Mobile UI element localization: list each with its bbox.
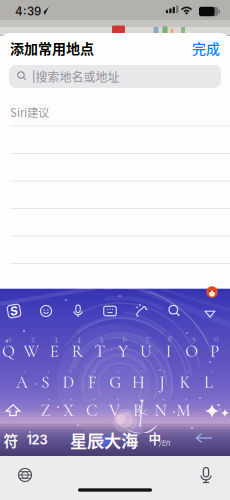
button[interactable]: Y: [112, 337, 134, 365]
button[interactable]: G: [104, 368, 126, 396]
staticText: Z: [40, 400, 50, 421]
button[interactable]: Search: [164, 301, 184, 321]
staticText: A: [16, 372, 28, 393]
button[interactable]: Voice input: [68, 301, 88, 321]
staticText: X: [63, 400, 74, 421]
staticText: F: [88, 372, 96, 393]
staticText: 123: [26, 432, 47, 448]
staticText: N: [154, 400, 166, 421]
button[interactable]: D: [58, 368, 80, 396]
staticText: D: [63, 372, 75, 393]
staticText: 7: [145, 333, 149, 344]
button[interactable]: I: [158, 337, 180, 365]
staticText: 中: [148, 429, 161, 447]
staticText: 完成: [192, 38, 220, 58]
button[interactable]: S: [34, 368, 56, 396]
button[interactable]: M: [172, 396, 194, 424]
staticText: 9: [191, 333, 195, 344]
button[interactable]: N: [149, 396, 171, 424]
button[interactable]: Stickers: [203, 283, 221, 301]
button[interactable]: W: [20, 337, 42, 365]
staticText: 2: [31, 333, 35, 344]
button[interactable]: Next keyboard: [15, 465, 35, 485]
staticText: 8: [168, 333, 173, 344]
staticText: W: [23, 341, 39, 362]
button[interactable]: F: [81, 368, 103, 396]
button[interactable]: 搜索地名或地址: [9, 65, 221, 88]
button[interactable]: Q: [0, 337, 19, 365]
button[interactable]: C: [80, 396, 102, 424]
staticText: C: [86, 400, 97, 421]
button[interactable]: Sogou: [4, 301, 24, 321]
staticText: Y: [118, 341, 128, 362]
staticText: 符: [3, 429, 18, 451]
button[interactable]: K: [174, 368, 196, 396]
button[interactable]: X: [57, 396, 79, 424]
staticText: M: [176, 400, 190, 421]
staticText: I: [166, 341, 172, 362]
staticText: S: [10, 304, 18, 318]
button[interactable]: V: [103, 396, 125, 424]
staticText: B: [133, 400, 142, 421]
button[interactable]: R: [66, 337, 88, 365]
staticText: H: [132, 372, 145, 393]
button[interactable]: Dictate: [196, 465, 216, 485]
button[interactable]: T: [89, 337, 111, 365]
staticText: T: [95, 341, 106, 362]
staticText: Siri建议: [10, 104, 49, 120]
staticText: L: [204, 372, 213, 393]
staticText: J: [159, 372, 164, 393]
staticText: 0: [214, 333, 218, 344]
button[interactable]: Delete: [203, 400, 223, 420]
staticText: O: [185, 341, 198, 362]
button[interactable]: 完成: [192, 38, 220, 58]
button[interactable]: Z: [34, 396, 56, 424]
staticText: 3: [54, 333, 58, 344]
button[interactable]: B: [126, 396, 148, 424]
staticText: 5: [100, 333, 104, 344]
button[interactable]: L: [197, 368, 219, 396]
button[interactable]: Hide keyboard: [200, 303, 220, 323]
staticText: G: [109, 372, 121, 393]
staticText: 星辰大海: [70, 427, 138, 453]
button[interactable]: Switch language: [147, 428, 173, 452]
button[interactable]: Handwriting: [132, 301, 152, 321]
staticText: 添加常用地点: [10, 38, 94, 58]
staticText: 搜索地名或地址: [35, 68, 119, 85]
button[interactable]: Shift: [3, 400, 23, 420]
button[interactable]: A: [11, 368, 33, 396]
staticText: /En: [159, 439, 170, 447]
staticText: 4: [77, 333, 81, 344]
button[interactable]: J: [151, 368, 173, 396]
staticText: 4:39: [15, 5, 41, 18]
button[interactable]: O: [181, 337, 203, 365]
button[interactable]: Keyboard layouts: [100, 301, 120, 321]
button[interactable]: Return: [193, 428, 217, 452]
button[interactable]: P: [204, 337, 226, 365]
button[interactable]: 符: [0, 428, 23, 452]
staticText: 1: [8, 333, 11, 344]
staticText: U: [140, 341, 152, 362]
staticText: P: [210, 341, 219, 362]
button[interactable]: Emoji: [36, 301, 56, 321]
button[interactable]: 123: [20, 428, 54, 452]
staticText: V: [109, 400, 120, 421]
staticText: S: [41, 372, 49, 393]
staticText: 6: [122, 333, 126, 344]
button[interactable]: Space: [59, 428, 149, 452]
staticText: R: [72, 341, 83, 362]
button[interactable]: U: [135, 337, 157, 365]
button[interactable]: H: [127, 368, 149, 396]
staticText: E: [50, 341, 59, 362]
staticText: K: [180, 372, 191, 393]
button[interactable]: E: [43, 337, 65, 365]
staticText: Q: [2, 341, 15, 362]
